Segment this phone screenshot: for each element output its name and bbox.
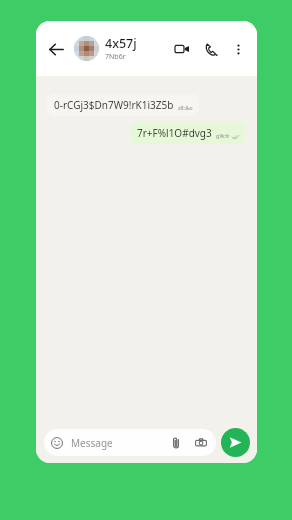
staticText: 4x57j [105, 35, 137, 52]
staticText: Message [71, 436, 168, 450]
button[interactable]: More options [227, 38, 249, 60]
button[interactable]: 7r+F%l1O#dvg3 [130, 122, 245, 144]
button[interactable]: Back [44, 37, 68, 61]
staticText: 7Nb6r [105, 52, 126, 62]
button[interactable]: 4x57j [105, 35, 171, 62]
button[interactable]: Emoji [44, 429, 216, 456]
button[interactable]: Emoji [50, 436, 64, 450]
staticText: z8:&o [178, 104, 193, 111]
button[interactable]: Camera [193, 435, 208, 450]
button[interactable]: 0-rCGj3$Dn7W9!rK1i3Z5b [47, 94, 199, 116]
staticText: 7r+F%l1O#dvg3 [137, 126, 212, 140]
button[interactable]: Voice call [200, 38, 222, 60]
staticText: 0-rCGj3$Dn7W9!rK1i3Z5b [54, 98, 174, 112]
button[interactable]: Video call [171, 38, 193, 60]
button[interactable]: Send [221, 428, 250, 457]
button[interactable]: Attach [168, 435, 183, 450]
staticText: g%:fr [216, 132, 230, 139]
